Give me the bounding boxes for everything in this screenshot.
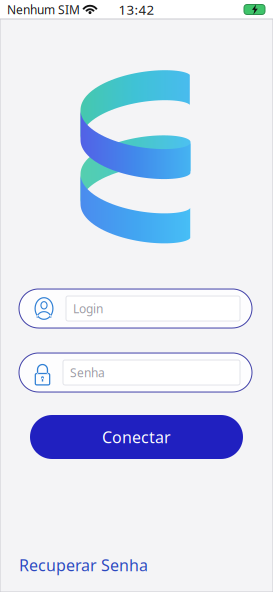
button[interactable]: Recuperar Senha [19, 555, 252, 575]
button[interactable]: Conectar [19, 415, 252, 459]
staticText: Recuperar Senha [19, 554, 148, 576]
staticText: Senha [70, 364, 105, 380]
staticText: Conectar [102, 426, 171, 448]
staticText: Login [73, 300, 103, 316]
staticText: Nenhum SIM [7, 1, 80, 17]
staticText: 13:42 [118, 1, 154, 18]
